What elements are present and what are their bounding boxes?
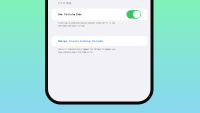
staticText: Manage Known AirDrop Contacts (58, 39, 103, 43)
staticText: Out of Range (58, 2, 71, 4)
button[interactable]: Manage Known AirDrop Contacts (51, 36, 147, 46)
staticText: Use Cellular Data (58, 13, 81, 16)
button[interactable]: Use Cellular Data (51, 8, 147, 20)
staticText: You will automatically appear for 30 day… (58, 48, 115, 53)
staticText: Continue to send and receive content whe… (58, 21, 115, 27)
